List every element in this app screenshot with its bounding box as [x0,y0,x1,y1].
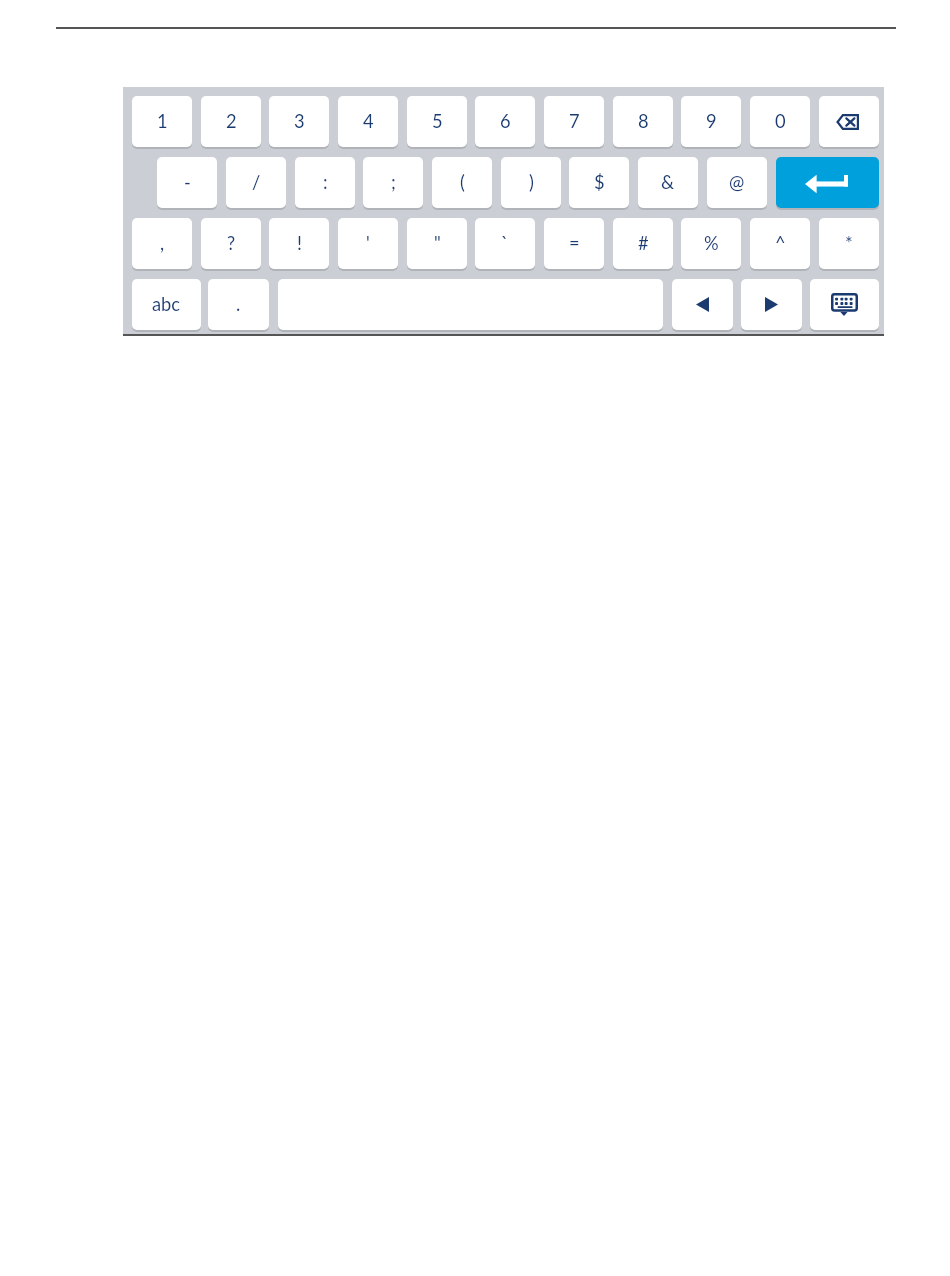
button[interactable]: # [613,218,673,269]
button[interactable]: ' [338,218,398,269]
button[interactable]: $ [569,157,629,208]
staticText: 1 [157,110,168,132]
button[interactable]: - [157,157,217,208]
button[interactable]: Backspace [819,96,879,147]
staticText: ` [501,232,509,254]
staticText: ) [529,171,534,193]
button[interactable]: 5 [407,96,467,147]
staticText: : [323,171,328,193]
staticText: " [434,232,441,254]
staticText: / [252,171,261,193]
button[interactable]: ; [363,157,423,208]
button[interactable]: 4 [338,96,398,147]
staticText: abc [152,293,181,315]
staticText: & [661,171,675,193]
staticText: ( [460,171,465,193]
button[interactable]: abc [132,279,201,330]
button[interactable]: 2 [201,96,261,147]
staticText: ^ [775,232,786,254]
staticText: ! [297,232,302,254]
button[interactable]: Move cursor left [672,279,733,330]
button[interactable]: 1 [132,96,192,147]
button[interactable]: 7 [544,96,604,147]
button[interactable]: / [226,157,286,208]
button[interactable]: 6 [475,96,535,147]
staticText: . [236,293,241,315]
staticText: @ [729,171,745,193]
button[interactable]: % [681,218,741,269]
staticText: - [184,171,191,193]
staticText: ; [391,171,396,193]
staticText: 0 [775,110,786,132]
staticText: 9 [706,110,717,132]
button[interactable]: = [544,218,604,269]
button[interactable]: , [132,218,192,269]
button[interactable]: 9 [681,96,741,147]
button[interactable]: Hide keyboard [810,279,879,330]
button[interactable]: Enter [776,157,879,208]
button[interactable]: : [295,157,355,208]
button[interactable]: 3 [269,96,329,147]
staticText: 8 [638,110,649,132]
staticText: * [845,232,853,254]
staticText: 3 [294,110,305,132]
staticText: 7 [569,110,580,132]
button[interactable]: ^ [750,218,810,269]
button[interactable]: ) [501,157,561,208]
button[interactable]: @ [707,157,767,208]
button[interactable]: ! [269,218,329,269]
staticText: , [160,232,165,254]
staticText: ' [366,232,370,254]
button[interactable]: 8 [613,96,673,147]
staticText: = [569,232,580,254]
button[interactable]: " [407,218,467,269]
button[interactable]: ( [432,157,492,208]
staticText: 5 [432,110,443,132]
staticText: % [704,232,719,254]
staticText: $ [594,171,605,193]
button[interactable]: & [638,157,698,208]
button[interactable]: ? [201,218,261,269]
staticText: 4 [363,110,374,132]
staticText: ? [227,232,236,254]
staticText: 6 [500,110,511,132]
button[interactable]: . [208,279,269,330]
button[interactable]: 0 [750,96,810,147]
button[interactable]: * [819,218,879,269]
button[interactable]: Move cursor right [741,279,802,330]
staticText: 2 [226,110,237,132]
button[interactable]: ` [475,218,535,269]
staticText: # [638,232,649,254]
